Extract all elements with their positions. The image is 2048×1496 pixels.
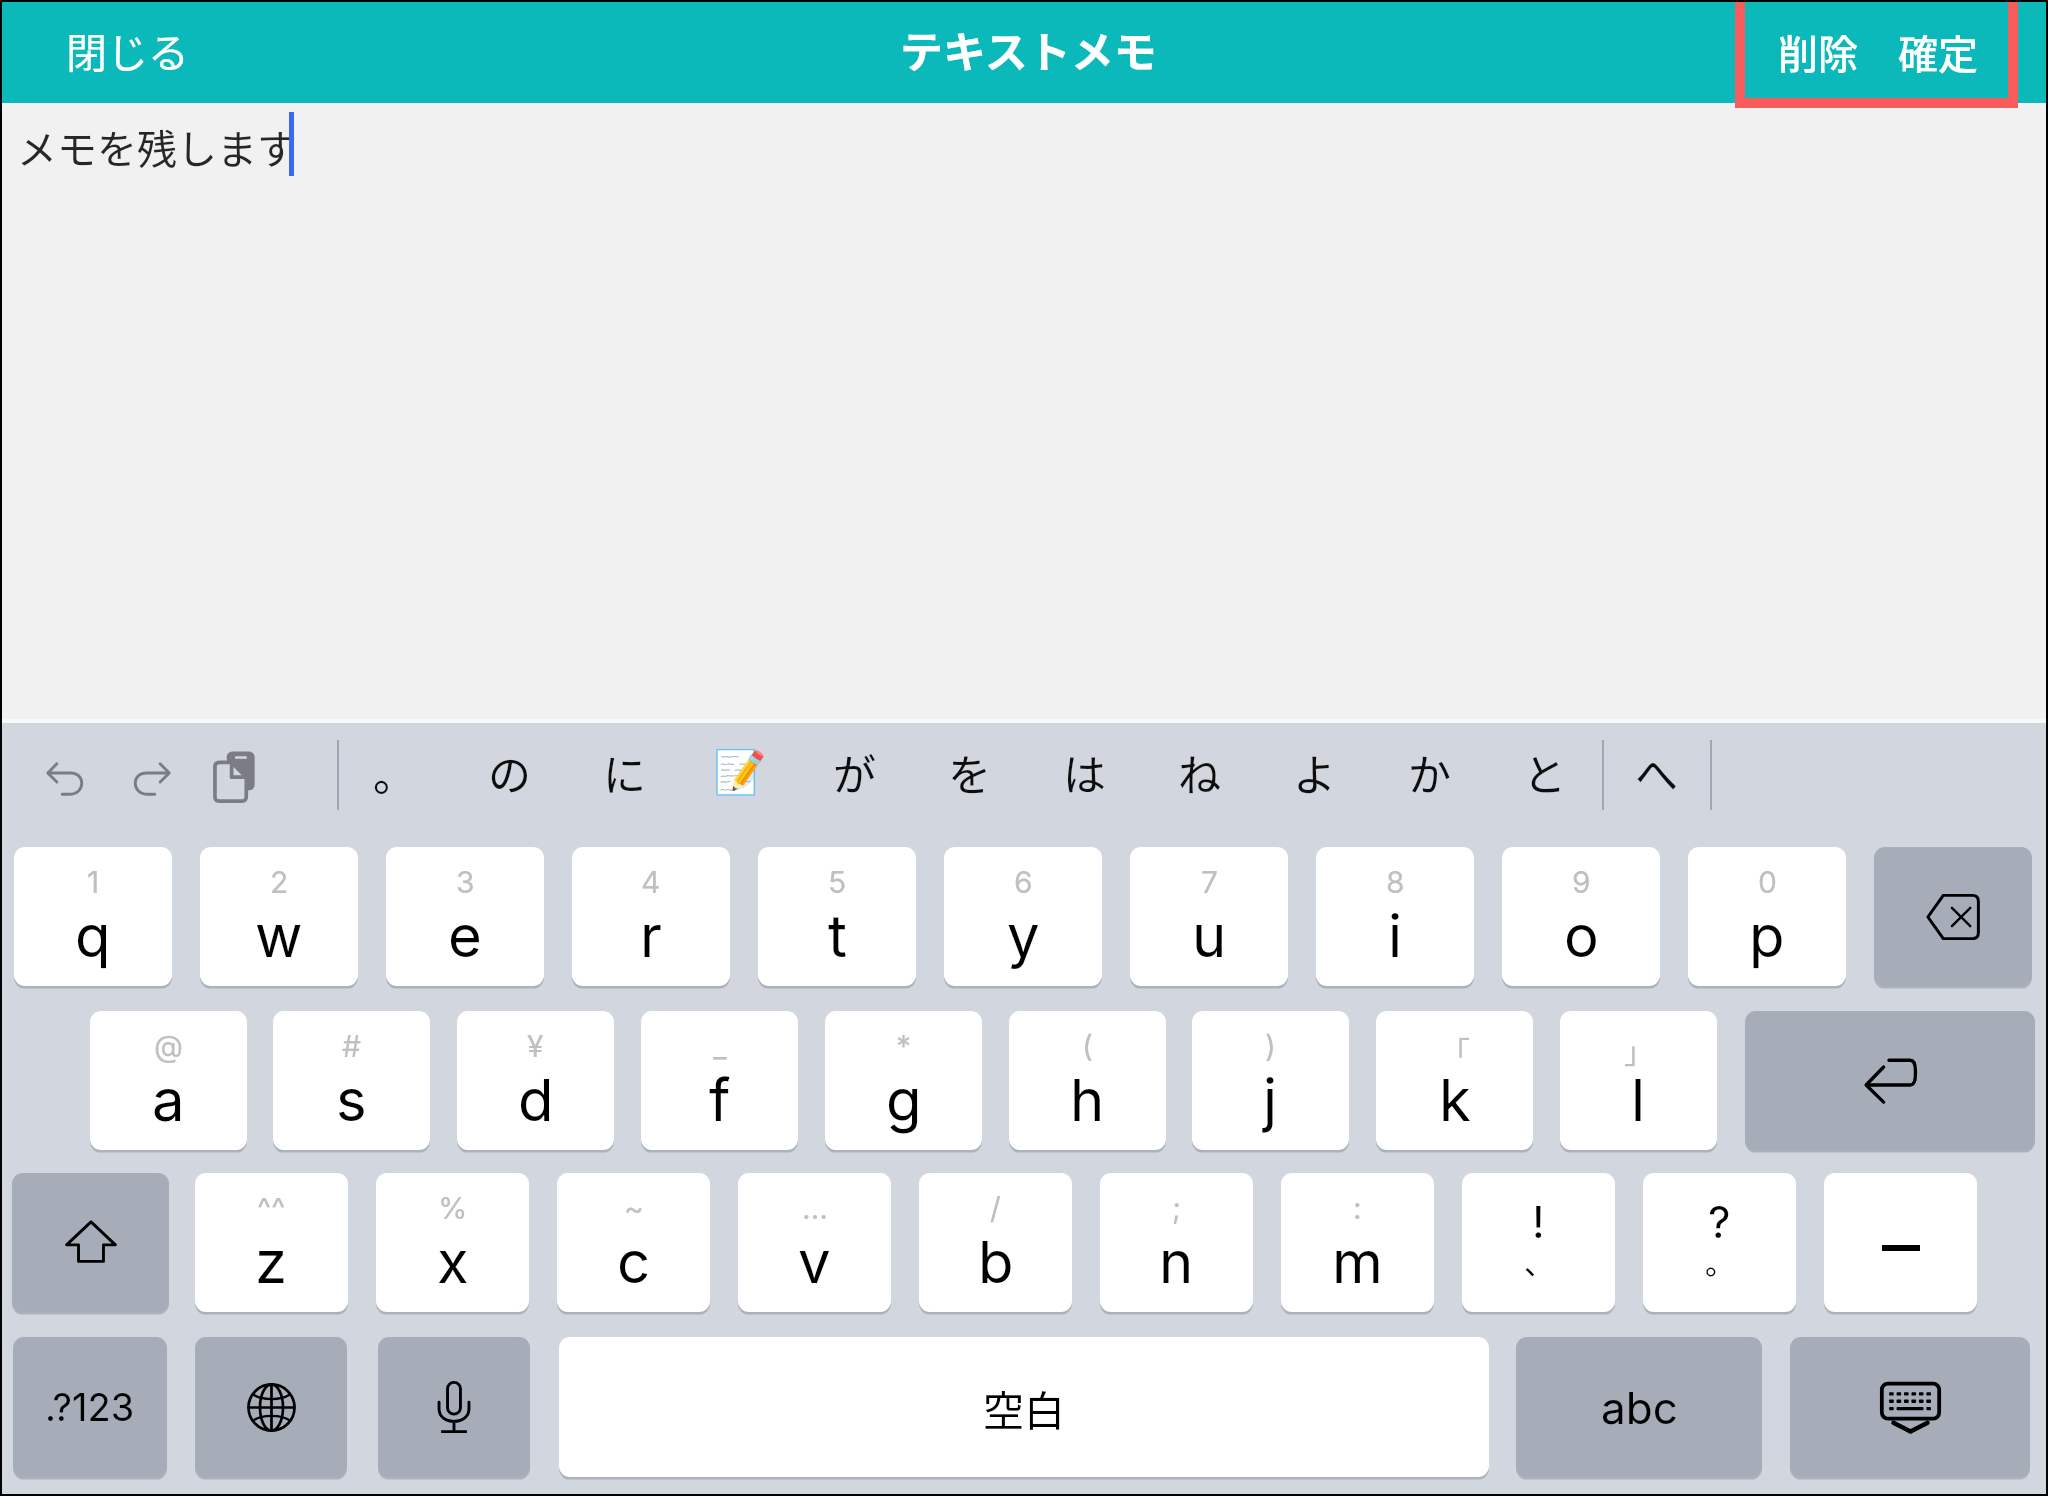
staticText: q [75,901,111,971]
button[interactable]: の [452,712,567,832]
button[interactable]: 空白 [559,1337,1489,1481]
button[interactable]: Shift [12,1173,169,1316]
button[interactable]: Memo text field [0,103,2048,723]
staticText: u [1192,901,1227,971]
button[interactable]: 7 [1130,847,1288,990]
staticText: k [1439,1065,1471,1135]
button[interactable]: 9 [1502,847,1660,990]
button[interactable]: / [919,1173,1072,1316]
button[interactable]: 1 [14,847,172,990]
button[interactable]: 確定 [1876,10,2000,93]
staticText: 1 [87,864,100,900]
staticText: 2 [270,864,289,900]
button[interactable]: Change language [195,1337,347,1481]
button[interactable]: は [1027,712,1142,832]
button[interactable]: ! [1462,1173,1615,1316]
button[interactable]: % [376,1173,529,1316]
button[interactable]: abc [1516,1337,1762,1481]
button[interactable]: Redo [109,734,193,818]
button[interactable]: ¥ [457,1011,614,1154]
button[interactable]: 4 [572,847,730,990]
staticText: _ [713,1028,727,1064]
button[interactable]: 「 [1376,1011,1533,1154]
button[interactable]: 5 [758,847,916,990]
staticText: ( [1082,1028,1093,1064]
button[interactable]: が [797,712,912,832]
button[interactable]: : [1281,1173,1434,1316]
staticText: メモを残します [17,118,297,176]
staticText: v [798,1227,831,1297]
button[interactable]: Hide keyboard [1790,1337,2030,1481]
staticText: e [448,901,482,971]
button[interactable]: 閉じる [40,2,215,97]
staticText: へ [1635,741,1678,803]
button[interactable]: を [912,712,1027,832]
staticText: は [1063,741,1106,803]
button[interactable]: よ [1257,712,1372,832]
staticText: 、 [1524,1239,1554,1282]
staticText: ) [1265,1028,1276,1064]
staticText: 閉じる [66,20,189,79]
button[interactable]: .?123 [13,1337,167,1481]
button[interactable] [1824,1173,1977,1316]
button[interactable]: Voice input [378,1337,530,1481]
button[interactable]: ~ [557,1173,710,1316]
staticText: 4 [641,864,661,900]
button[interactable]: # [273,1011,430,1154]
button[interactable]: 削除 [1756,10,1880,93]
button[interactable]: Paste [194,734,278,818]
staticText: ね [1178,741,1221,803]
staticText: 」 [1624,1028,1654,1071]
button[interactable]: 3 [386,847,544,990]
button[interactable]: へ [1602,712,1710,832]
button[interactable]: ; [1100,1173,1253,1316]
staticText: に [603,741,646,803]
button[interactable]: ) [1192,1011,1349,1154]
staticText: : [1353,1190,1362,1226]
staticText: ¥ [527,1028,544,1064]
staticText: z [255,1227,288,1297]
button[interactable]: 8 [1316,847,1474,990]
button[interactable]: ? [1643,1173,1796,1316]
staticText: 0 [1758,864,1777,900]
staticText: 3 [456,864,475,900]
button[interactable]: Return [1745,1011,2035,1154]
staticText: テキストメモ [900,18,1157,80]
staticText: 📝 [713,747,767,797]
staticText: 空白 [983,1378,1065,1437]
staticText: か [1408,741,1451,803]
staticText: 。 [1705,1239,1735,1282]
button[interactable]: 」 [1560,1011,1717,1154]
staticText: g [886,1065,922,1135]
button[interactable]: か [1372,712,1487,832]
button[interactable]: 0 [1688,847,1846,990]
staticText: 確定 [1898,23,1978,81]
staticText: 8 [1386,864,1405,900]
staticText: / [990,1190,1001,1226]
button[interactable]: に [567,712,682,832]
button[interactable]: と [1487,712,1602,832]
button[interactable]: 6 [944,847,1102,990]
staticText: o [1564,901,1599,971]
button[interactable]: … [738,1173,891,1316]
staticText: # [342,1028,361,1064]
staticText: が [833,741,876,803]
staticText: c [617,1227,651,1297]
staticText: ^^ [257,1190,286,1226]
staticText: .?123 [45,1384,135,1430]
button[interactable]: Undo [24,734,108,818]
button[interactable]: 。 [337,712,452,832]
staticText: よ [1293,741,1336,803]
staticText: x [437,1227,469,1297]
button[interactable]: 📝 [682,712,797,832]
button[interactable]: * [825,1011,982,1154]
staticText: 。 [373,741,416,803]
button[interactable]: ( [1009,1011,1166,1154]
button[interactable]: ね [1142,712,1257,832]
button[interactable]: 2 [200,847,358,990]
button[interactable]: @ [90,1011,247,1154]
staticText: ? [1708,1195,1731,1248]
button[interactable]: ^^ [195,1173,348,1316]
button[interactable]: Backspace [1874,847,2032,990]
button[interactable]: _ [641,1011,798,1154]
